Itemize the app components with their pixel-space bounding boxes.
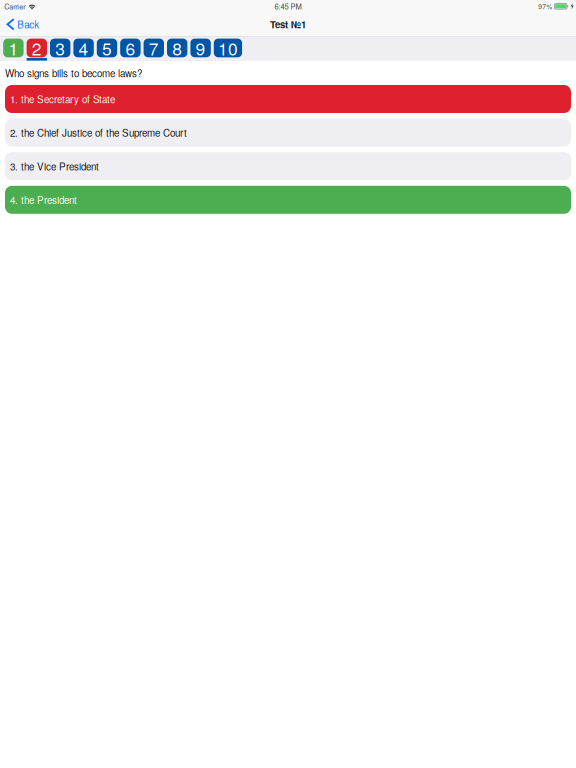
staticText: 2	[32, 35, 42, 60]
button[interactable]: 2	[27, 39, 47, 61]
staticText: 8	[172, 35, 182, 60]
button[interactable]: 2. the Chief Justice of the Supreme Cour…	[5, 119, 571, 147]
staticText: 6	[125, 35, 135, 60]
button[interactable]: 3	[50, 39, 70, 61]
button[interactable]: 1	[3, 39, 24, 61]
button[interactable]: 10	[214, 39, 242, 61]
staticText: 5	[102, 35, 112, 60]
staticText: 4	[79, 35, 89, 60]
staticText: 7	[149, 35, 159, 60]
staticText: Test №1	[270, 17, 306, 31]
button[interactable]: 8	[167, 39, 187, 61]
staticText: 10	[218, 35, 238, 60]
staticText: 1	[8, 35, 18, 60]
staticText: 9	[196, 35, 206, 60]
button[interactable]: 7	[144, 39, 164, 61]
button[interactable]: 3. the Vice President	[5, 152, 571, 180]
staticText: 4. the President	[10, 193, 77, 207]
staticText: 97%	[538, 1, 552, 11]
staticText: 1. the Secretary of State	[10, 92, 115, 106]
button[interactable]: 6	[120, 39, 141, 61]
button[interactable]: 1. the Secretary of State	[5, 85, 571, 113]
button[interactable]: 4	[73, 39, 94, 61]
button[interactable]: 4. the President	[5, 186, 571, 214]
staticText: 3. the Vice President	[10, 159, 99, 173]
staticText: 3	[55, 35, 65, 60]
button[interactable]: 5	[97, 39, 117, 61]
staticText: 6:45 PM	[274, 1, 301, 12]
staticText: Who signs bills to become laws?	[5, 66, 142, 80]
button[interactable]: Back	[0, 13, 45, 35]
staticText: Back	[17, 17, 39, 31]
staticText: 2. the Chief Justice of the Supreme Cour…	[10, 126, 187, 140]
staticText: Carrier	[4, 1, 25, 11]
button[interactable]: 9	[190, 39, 211, 61]
